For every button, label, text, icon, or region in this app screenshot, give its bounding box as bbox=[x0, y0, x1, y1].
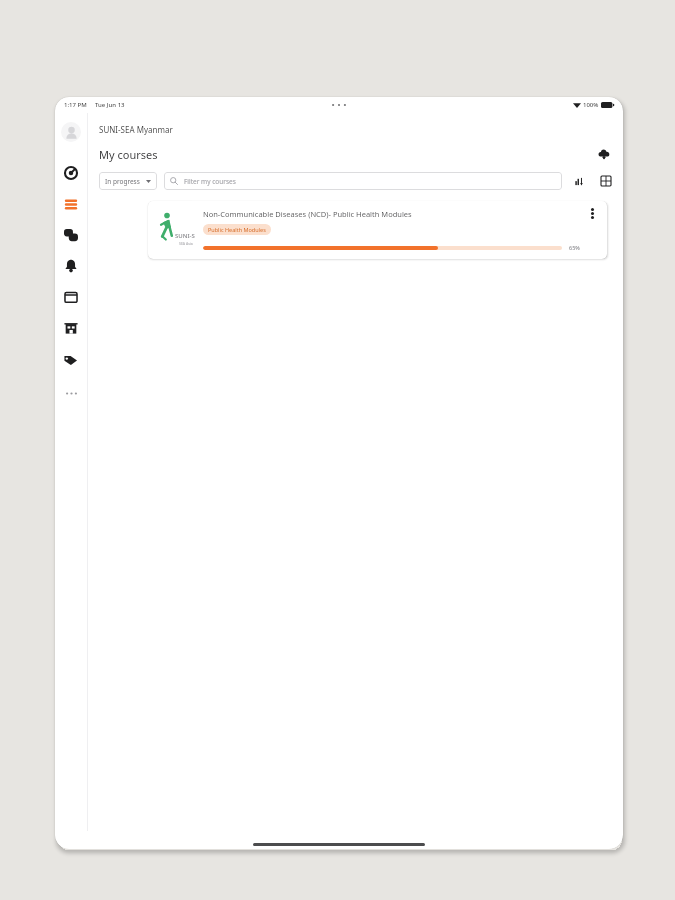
button[interactable]: Site home bbox=[60, 317, 82, 339]
staticText: 1:17 PM bbox=[64, 101, 87, 109]
button[interactable]: Calendar bbox=[60, 286, 82, 308]
staticText: My courses bbox=[99, 147, 158, 162]
staticText: Filter my courses bbox=[184, 177, 236, 186]
staticText: In progress bbox=[105, 177, 140, 186]
button[interactable]: Dashboard bbox=[60, 162, 82, 184]
button[interactable]: Course options bbox=[585, 208, 599, 226]
staticText: SUNI-S bbox=[175, 232, 195, 240]
button[interactable]: My courses bbox=[60, 193, 82, 215]
staticText: Non-Communicable Diseases (NCD)- Public … bbox=[203, 209, 412, 219]
staticText: SEA Asia bbox=[179, 241, 193, 246]
button[interactable]: Download courses bbox=[594, 144, 614, 164]
staticText: 65% bbox=[569, 244, 580, 251]
button[interactable]: Tags bbox=[60, 348, 82, 370]
button[interactable]: Filter my courses bbox=[164, 172, 562, 190]
button[interactable]: SUNI-S bbox=[148, 201, 607, 259]
staticText: SUNI-SEA Myanmar bbox=[99, 124, 173, 135]
button[interactable]: Profile bbox=[61, 122, 81, 142]
button[interactable]: More bbox=[61, 383, 81, 403]
staticText: 100% bbox=[583, 101, 599, 109]
button[interactable]: In progress bbox=[99, 172, 157, 190]
staticText: Tue Jun 13 bbox=[95, 101, 125, 109]
staticText: Public Health Modules bbox=[208, 226, 266, 233]
button[interactable]: Grid view bbox=[598, 173, 614, 189]
button[interactable]: Sort courses bbox=[571, 173, 587, 189]
button[interactable]: Messages bbox=[60, 224, 82, 246]
button[interactable]: Notifications bbox=[60, 255, 82, 277]
